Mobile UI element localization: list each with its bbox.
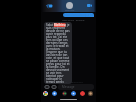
button[interactable]: App shortcut xyxy=(62,91,67,96)
button[interactable]: Back xyxy=(45,2,53,10)
staticText: Hier 23:04 · Envoye xyxy=(62,18,85,21)
staticText: Chat · Maintenant xyxy=(62,80,83,83)
button[interactable]: App shortcut xyxy=(71,91,76,96)
button[interactable]: Video call xyxy=(86,2,93,9)
button[interactable]: Merci beaucoup a toi xyxy=(63,13,94,17)
staticText: Mathieu xyxy=(63,8,76,11)
staticText: Merci beaucoup a toi xyxy=(64,13,94,17)
button[interactable]: App shortcut xyxy=(88,91,93,96)
button[interactable]: Contact avatar xyxy=(66,2,73,9)
staticText: Salut Mathieu, je suis vraiment desole d… xyxy=(46,23,70,83)
button[interactable]: Gallery xyxy=(51,84,56,89)
button[interactable]: App shortcut xyxy=(80,91,85,96)
button[interactable]: App shortcut xyxy=(52,91,57,96)
button[interactable]: Message xyxy=(58,84,94,90)
button[interactable]: Salut Mathieu, je suis vraiment desole d… xyxy=(44,22,72,84)
button[interactable]: Camera xyxy=(44,84,49,89)
button[interactable]: App shortcut xyxy=(43,91,48,96)
staticText: Message xyxy=(62,85,75,89)
